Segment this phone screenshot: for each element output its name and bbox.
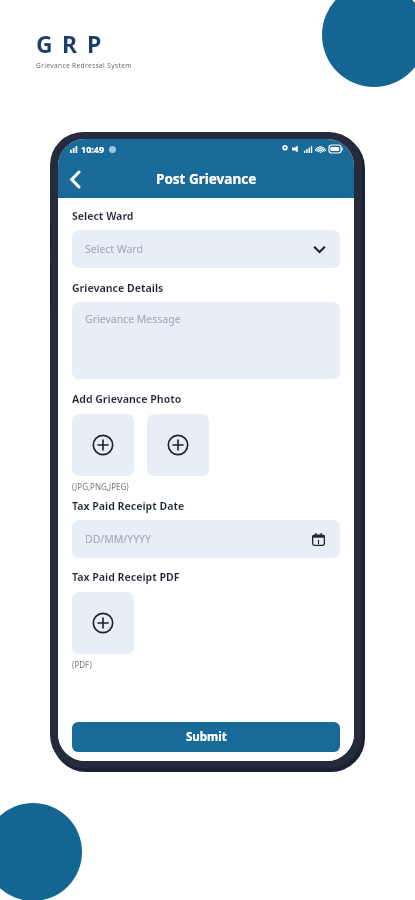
staticText: Select Ward xyxy=(72,209,134,223)
staticText: Post Grievance xyxy=(156,170,257,188)
button[interactable]: Select Ward xyxy=(72,230,340,268)
button[interactable]: Add PDF xyxy=(72,592,134,654)
button[interactable]: Back xyxy=(58,162,92,196)
staticText: Submit xyxy=(186,729,227,745)
staticText: Select Ward xyxy=(85,242,143,256)
staticText: R xyxy=(62,28,78,59)
staticText: Grievance Message xyxy=(85,312,181,326)
staticText: Grievance Redressal System xyxy=(36,61,132,70)
button[interactable]: Pick date xyxy=(310,531,327,548)
staticText: Grievance Details xyxy=(72,281,164,295)
staticText: (PDF) xyxy=(72,659,92,670)
button[interactable]: Grievance Message xyxy=(72,302,340,379)
button[interactable]: DD/MM/YYYY xyxy=(72,520,340,558)
button[interactable]: Add photo 2 xyxy=(147,414,209,476)
staticText: Tax Paid Receipt PDF xyxy=(72,570,180,584)
button[interactable]: Submit xyxy=(72,722,340,752)
staticText: G xyxy=(36,28,53,59)
staticText: 10:49 xyxy=(81,143,105,155)
staticText: P xyxy=(87,28,102,59)
button[interactable]: Add photo 1 xyxy=(72,414,134,476)
staticText: (JPG,PNG,JPEG) xyxy=(72,481,129,492)
staticText: DD/MM/YYYY xyxy=(85,532,151,546)
staticText: Tax Paid Receipt Date xyxy=(72,499,185,513)
staticText: Add Grievance Photo xyxy=(72,392,182,406)
